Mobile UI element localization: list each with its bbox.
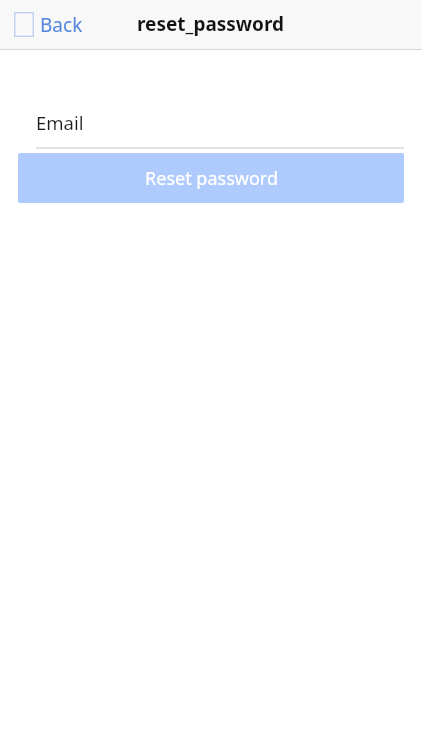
button[interactable]: Back: [14, 12, 87, 38]
staticText: Email: [36, 110, 84, 135]
staticText: Reset password: [145, 166, 278, 191]
button[interactable]: Reset password: [18, 153, 404, 203]
button[interactable]: Email: [36, 106, 404, 149]
staticText: Back: [40, 12, 83, 38]
staticText: reset_password: [137, 11, 285, 37]
